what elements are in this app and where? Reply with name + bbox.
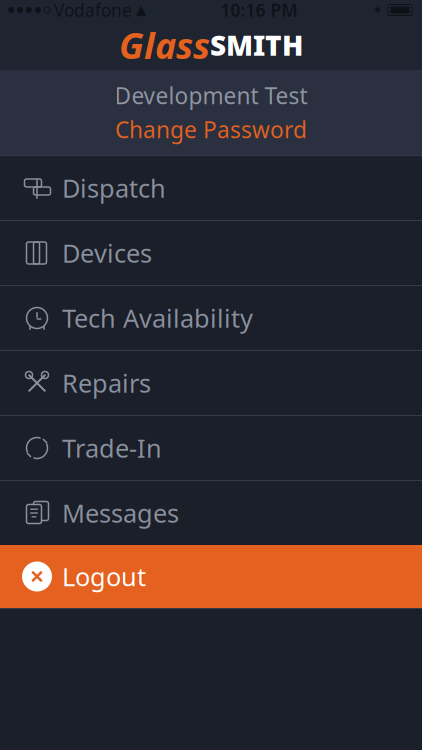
staticText: Messages — [62, 496, 179, 530]
staticText: Devices — [62, 236, 152, 270]
staticText: Change Password — [115, 114, 307, 145]
staticText: Glass — [119, 21, 210, 69]
button[interactable]: Devices — [0, 221, 422, 285]
staticText: Vodafone — [54, 0, 132, 21]
button[interactable]: Change Password — [115, 114, 307, 145]
button[interactable]: Repairs — [0, 351, 422, 415]
staticText: 10:16 PM — [220, 0, 297, 21]
button[interactable]: Tech Availability — [0, 286, 422, 350]
staticText: ✶ — [372, 2, 383, 17]
button[interactable]: Logout — [0, 545, 422, 608]
staticText: Development Test — [114, 80, 307, 110]
staticText: SMITH — [210, 26, 303, 64]
button[interactable]: Trade-In — [0, 416, 422, 480]
button[interactable]: Messages — [0, 481, 422, 545]
button[interactable]: Dispatch — [0, 156, 422, 220]
staticText: Logout — [62, 560, 146, 593]
staticText: Dispatch — [62, 171, 166, 205]
staticText: Tech Availability — [62, 301, 253, 335]
staticText: ▲ — [136, 2, 146, 17]
staticText: Repairs — [62, 366, 151, 400]
staticText: Trade-In — [62, 431, 162, 465]
